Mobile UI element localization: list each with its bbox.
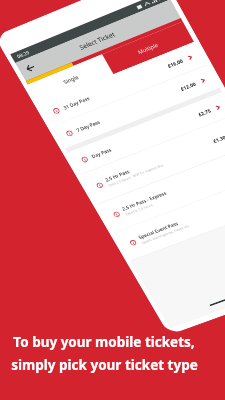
staticText: Valid for 2.5 hours — [124, 203, 154, 217]
staticText: Valid 2.5 hours - NOT for Express Bus — [108, 163, 165, 188]
staticText: £16.00 — [166, 57, 184, 69]
staticText: simply pick your ticket type — [11, 356, 198, 374]
staticText: 2.5 Hr Pass - Express — [121, 190, 168, 212]
staticText: Single — [62, 73, 80, 86]
button[interactable]: Special Event Pass — [114, 175, 225, 261]
button[interactable]: Back — [21, 59, 40, 76]
staticText: Special Event Pass — [137, 220, 179, 240]
button[interactable]: 2.5 Hr Pass — [81, 115, 225, 204]
button[interactable]: 31 Day Pass — [39, 42, 207, 126]
staticText: Select Ticket — [78, 30, 117, 52]
button[interactable]: 7 Day Pass — [52, 65, 219, 149]
button[interactable]: Day Pass — [68, 92, 225, 174]
staticText: £2.75 — [197, 107, 212, 118]
button[interactable]: Multiple — [102, 22, 194, 74]
staticText: 7 Day Pass — [75, 118, 101, 133]
button[interactable]: 2.5 Hr Pass - Express — [98, 145, 225, 232]
staticText: 08:29 — [15, 49, 31, 60]
button[interactable]: Single — [28, 54, 113, 104]
staticText: To buy your mobile tickets, — [13, 333, 195, 351]
staticText: 2.5 Hr Pass — [104, 168, 131, 183]
staticText: Day Pass — [90, 146, 113, 160]
staticText: £12.00 — [179, 80, 197, 92]
staticText: Sprint, Alumnigames, Fiesta, etc. — [141, 223, 191, 245]
staticText: 31 Day Pass — [62, 95, 91, 111]
staticText: Multiple — [136, 41, 160, 56]
staticText: £1.30 — [212, 134, 225, 144]
